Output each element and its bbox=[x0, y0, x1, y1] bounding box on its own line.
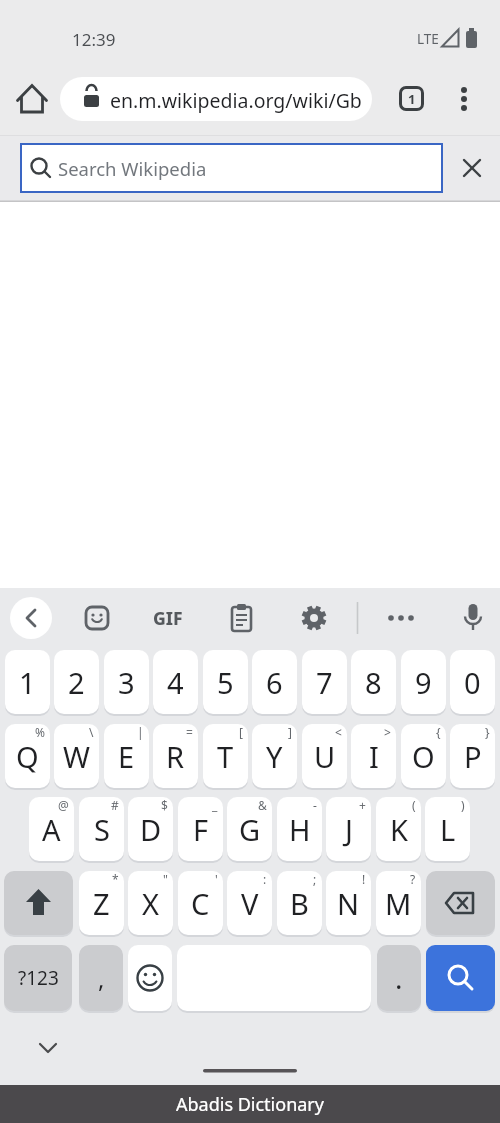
staticText: K bbox=[390, 810, 408, 849]
button[interactable]: D bbox=[128, 797, 173, 861]
button[interactable]: 7 bbox=[302, 650, 347, 714]
staticText: 5 bbox=[217, 663, 234, 702]
button[interactable]: 5 bbox=[203, 650, 248, 714]
staticText: Y bbox=[266, 737, 283, 776]
staticText: D bbox=[140, 810, 162, 849]
staticText: Q bbox=[16, 737, 39, 776]
staticText: ) bbox=[461, 797, 465, 813]
staticText: { bbox=[436, 724, 441, 740]
staticText: 0 bbox=[464, 663, 481, 702]
button[interactable]: N bbox=[326, 871, 371, 935]
button[interactable]: 2 bbox=[54, 650, 99, 714]
button[interactable]: GIF bbox=[147, 597, 189, 639]
staticText: U bbox=[314, 737, 336, 776]
staticText: ; bbox=[313, 871, 317, 887]
button[interactable]: 1 bbox=[399, 86, 424, 111]
button[interactable]: O bbox=[401, 724, 446, 788]
staticText: A bbox=[42, 810, 61, 849]
button[interactable]: Y bbox=[252, 724, 297, 788]
staticText: [ bbox=[239, 724, 243, 740]
staticText: + bbox=[359, 797, 366, 813]
button[interactable]: T bbox=[203, 724, 248, 788]
button[interactable]: I bbox=[351, 724, 396, 788]
button[interactable]: 0 bbox=[450, 650, 495, 714]
staticText: , bbox=[98, 962, 105, 995]
button[interactable] bbox=[10, 597, 52, 639]
button[interactable] bbox=[76, 597, 118, 639]
staticText: F bbox=[193, 810, 209, 849]
button[interactable]: V bbox=[227, 871, 272, 935]
button[interactable]: 8 bbox=[351, 650, 396, 714]
button[interactable] bbox=[452, 597, 494, 639]
button[interactable]: K bbox=[376, 797, 421, 861]
button[interactable]: 3 bbox=[104, 650, 149, 714]
button[interactable]: B bbox=[277, 871, 322, 935]
button[interactable]: 9 bbox=[401, 650, 446, 714]
button[interactable]: G bbox=[227, 797, 272, 861]
button[interactable]: X bbox=[128, 871, 173, 935]
button[interactable] bbox=[128, 945, 172, 1011]
button[interactable]: L bbox=[425, 797, 470, 861]
staticText: ( bbox=[412, 797, 416, 813]
button[interactable] bbox=[28, 1028, 68, 1068]
button[interactable]: Search Wikipedia bbox=[20, 143, 443, 193]
staticText: _ bbox=[212, 797, 218, 813]
staticText: E bbox=[118, 737, 135, 776]
button[interactable]: S bbox=[79, 797, 124, 861]
button[interactable]: R bbox=[153, 724, 198, 788]
button[interactable]: P bbox=[450, 724, 495, 788]
button[interactable]: Z bbox=[79, 871, 124, 935]
staticText: 2 bbox=[68, 663, 85, 702]
staticText: Z bbox=[93, 884, 110, 923]
button[interactable]: ?123 bbox=[4, 945, 72, 1011]
staticText: Abadis Dictionary bbox=[176, 1092, 324, 1117]
staticText: V bbox=[241, 884, 259, 923]
button[interactable]: J bbox=[326, 797, 371, 861]
button[interactable] bbox=[12, 82, 52, 122]
button[interactable]: Abadis Dictionary bbox=[0, 1085, 500, 1123]
staticText: @ bbox=[58, 797, 69, 813]
staticText: : bbox=[263, 871, 267, 887]
staticText: * bbox=[112, 871, 119, 887]
staticText: 4 bbox=[167, 663, 184, 702]
button[interactable]: 4 bbox=[153, 650, 198, 714]
button[interactable] bbox=[4, 871, 73, 935]
button[interactable]: U bbox=[302, 724, 347, 788]
staticText: I bbox=[369, 737, 379, 776]
button[interactable] bbox=[293, 597, 335, 639]
staticText: # bbox=[111, 797, 119, 813]
button[interactable]: 6 bbox=[252, 650, 297, 714]
staticText: Search Wikipedia bbox=[58, 156, 207, 181]
staticText: < bbox=[335, 724, 342, 740]
button[interactable]: . bbox=[377, 945, 421, 1011]
button[interactable] bbox=[426, 945, 495, 1011]
button[interactable] bbox=[426, 871, 495, 935]
staticText: ] bbox=[288, 724, 292, 740]
button[interactable]: W bbox=[54, 724, 99, 788]
button[interactable]: E bbox=[104, 724, 149, 788]
button[interactable] bbox=[448, 83, 480, 115]
button[interactable] bbox=[455, 151, 489, 185]
button[interactable]: 1 bbox=[5, 650, 50, 714]
button[interactable]: A bbox=[29, 797, 74, 861]
staticText: 9 bbox=[415, 663, 432, 702]
button[interactable]: en.m.wikipedia.org/wiki/Gb bbox=[60, 77, 372, 121]
staticText: C bbox=[191, 884, 210, 923]
button[interactable] bbox=[220, 597, 262, 639]
button[interactable]: C bbox=[178, 871, 223, 935]
staticText: S bbox=[94, 810, 110, 849]
button[interactable]: H bbox=[277, 797, 322, 861]
button[interactable]: , bbox=[79, 945, 123, 1011]
button[interactable]: F bbox=[178, 797, 223, 861]
staticText: 3 bbox=[118, 663, 135, 702]
button[interactable] bbox=[380, 597, 422, 639]
button[interactable]: M bbox=[376, 871, 421, 935]
staticText: GIF bbox=[153, 606, 183, 630]
button[interactable]: Q bbox=[5, 724, 50, 788]
staticText: 8 bbox=[365, 663, 382, 702]
staticText: . bbox=[395, 959, 403, 997]
staticText: O bbox=[412, 737, 435, 776]
staticText: 12:39 bbox=[72, 28, 116, 51]
staticText: " bbox=[163, 871, 168, 887]
